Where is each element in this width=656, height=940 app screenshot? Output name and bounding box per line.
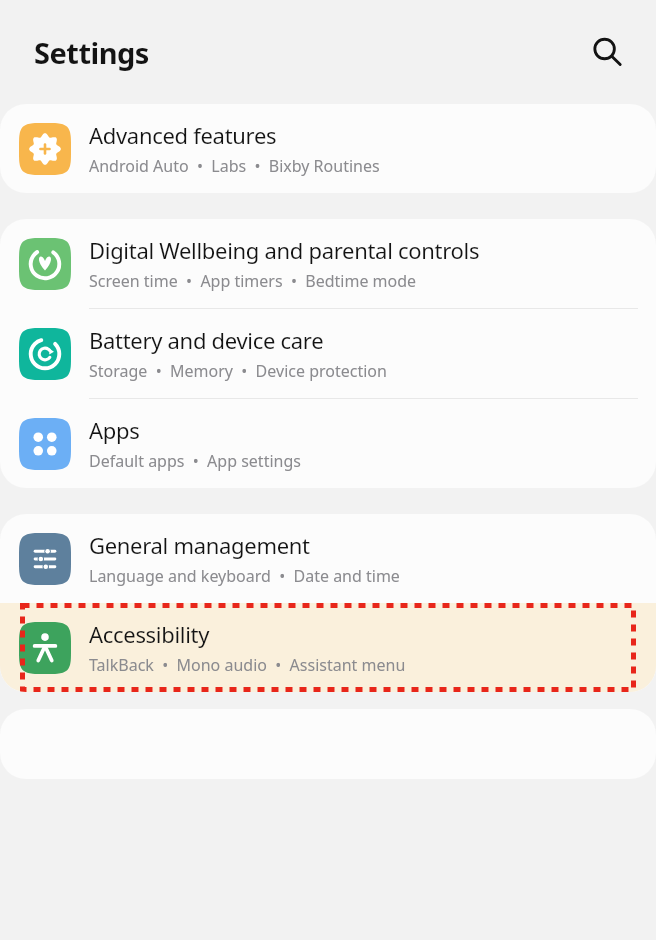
staticText: Accessibility xyxy=(89,619,210,649)
button[interactable]: General management xyxy=(0,514,656,603)
staticText: Language and keyboard • Date and time xyxy=(89,565,400,587)
staticText: Apps xyxy=(89,415,140,445)
staticText: Advanced features xyxy=(89,120,277,150)
button[interactable]: Search xyxy=(584,29,630,75)
button[interactable]: Accessibility xyxy=(0,603,656,692)
button[interactable]: Advanced features xyxy=(0,104,656,193)
staticText: Android Auto • Labs • Bixby Routines xyxy=(89,155,380,177)
staticText: General management xyxy=(89,530,310,560)
staticText: Battery and device care xyxy=(89,325,324,355)
button[interactable]: Battery and device care xyxy=(0,309,656,398)
staticText: Digital Wellbeing and parental controls xyxy=(89,235,480,265)
button[interactable]: Apps xyxy=(0,399,656,488)
button[interactable]: Digital Wellbeing and parental controls xyxy=(0,219,656,308)
staticText: TalkBack • Mono audio • Assistant menu xyxy=(89,654,406,676)
staticText: Storage • Memory • Device protection xyxy=(89,360,387,382)
staticText: Screen time • App timers • Bedtime mode xyxy=(89,270,417,292)
staticText: Settings xyxy=(34,33,149,72)
staticText: Default apps • App settings xyxy=(89,450,301,472)
